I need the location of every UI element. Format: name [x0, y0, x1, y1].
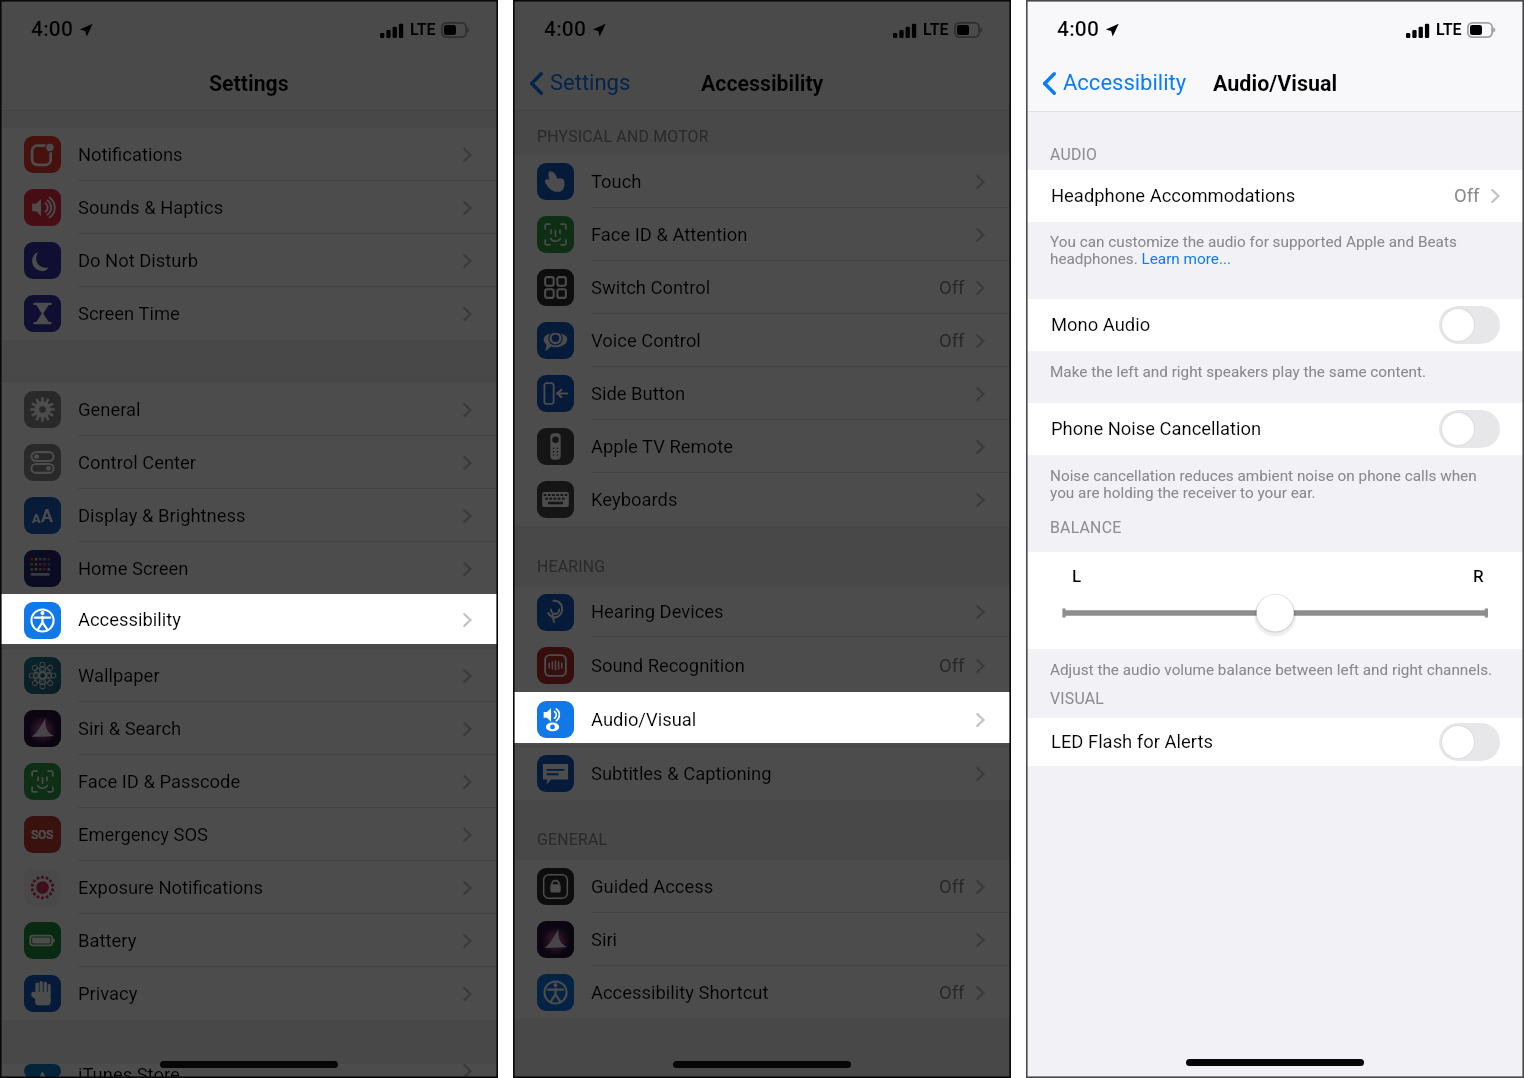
staticText: Accessibility — [701, 71, 824, 96]
staticText: 4:00 — [544, 17, 587, 42]
staticText: Screen Time — [78, 303, 180, 325]
button[interactable]: Sounds & Haptics — [0, 181, 498, 234]
staticText: Off — [939, 655, 965, 677]
button[interactable]: Keyboards — [513, 473, 1011, 526]
button[interactable]: Home Screen — [0, 542, 498, 595]
staticText: Hearing Devices — [591, 601, 724, 623]
staticText: Adjust the audio volume balance between … — [1050, 661, 1493, 679]
button[interactable]: iTunes Store — [0, 1064, 498, 1078]
button[interactable]: Apple TV Remote — [513, 420, 1011, 473]
button[interactable]: Wallpaper — [0, 649, 498, 702]
staticText: Off — [939, 330, 965, 352]
staticText: VISUAL — [1050, 689, 1105, 708]
staticText: LTE — [410, 20, 436, 39]
staticText: Siri & Search — [78, 718, 182, 740]
button[interactable]: LED Flash for Alerts — [1026, 718, 1524, 766]
staticText: Off — [939, 876, 965, 898]
staticText: Control Center — [78, 452, 197, 474]
staticText: Settings — [209, 71, 289, 96]
staticText: Off — [939, 277, 965, 299]
button[interactable]: Back — [530, 70, 631, 96]
staticText: Emergency SOS — [78, 824, 209, 846]
button[interactable]: Guided Access — [513, 860, 1011, 913]
button[interactable]: Side Button — [513, 367, 1011, 420]
button[interactable]: Headphone Accommodations — [1026, 170, 1524, 222]
button[interactable]: Face ID & Attention — [513, 208, 1011, 261]
staticText: LTE — [1436, 20, 1462, 39]
staticText: LTE — [923, 20, 949, 39]
staticText: GENERAL — [537, 830, 608, 849]
button[interactable]: Toggle — [1439, 723, 1500, 761]
button[interactable]: A — [0, 489, 498, 542]
button[interactable]: Back — [1043, 70, 1187, 96]
button[interactable]: Touch — [513, 155, 1011, 208]
button[interactable]: SOS — [0, 808, 498, 861]
staticText: Audio/Visual — [1213, 71, 1338, 96]
staticText: PHYSICAL AND MOTOR — [537, 127, 709, 146]
staticText: Notifications — [78, 144, 183, 166]
button[interactable]: Phone Noise Cancellation — [1026, 403, 1524, 455]
staticText: 4:00 — [31, 17, 74, 42]
button[interactable]: Do Not Disturb — [0, 234, 498, 287]
button[interactable]: Voice Control — [513, 314, 1011, 367]
button[interactable]: Siri & Search — [0, 702, 498, 755]
button[interactable]: You can customize the audio for supporte… — [1050, 233, 1457, 268]
other: Back — [530, 72, 543, 95]
staticText: Settings — [550, 70, 631, 96]
staticText: LED Flash for Alerts — [1051, 731, 1213, 753]
button[interactable]: Battery — [0, 914, 498, 967]
staticText: Accessibility Shortcut — [591, 982, 769, 1004]
staticText: A — [41, 505, 53, 526]
button[interactable]: Switch Control — [513, 261, 1011, 314]
staticText: Touch — [591, 171, 642, 193]
staticText: Accessibility — [1063, 70, 1187, 96]
button[interactable]: Privacy — [0, 967, 498, 1020]
staticText: Do Not Disturb — [78, 250, 199, 272]
staticText: Keyboards — [591, 489, 678, 511]
button[interactable]: Screen Time — [0, 287, 498, 340]
staticText: BALANCE — [1050, 518, 1122, 537]
staticText: Exposure Notifications — [78, 877, 263, 899]
staticText: Accessibility — [78, 609, 181, 631]
button[interactable]: Toggle — [1439, 306, 1500, 344]
staticText: Make the left and right speakers play th… — [1050, 363, 1427, 381]
staticText: iTunes Store — [78, 1064, 180, 1078]
staticText: Audio/Visual — [591, 709, 697, 731]
staticText: Sound Recognition — [591, 655, 745, 677]
button[interactable]: Audio/Visual — [513, 694, 1011, 745]
button[interactable]: Notifications — [0, 128, 498, 181]
button[interactable]: Sound Recognition — [513, 637, 1011, 694]
staticText: SOS — [31, 828, 54, 842]
other: Back — [1043, 72, 1056, 95]
button[interactable]: Siri — [513, 913, 1011, 966]
button[interactable]: Control Center — [0, 436, 498, 489]
staticText: Subtitles & Captioning — [591, 763, 772, 785]
staticText: Side Button — [591, 383, 686, 405]
staticText: Noise cancellation reduces ambient noise… — [1050, 467, 1477, 502]
staticText: Face ID & Passcode — [78, 771, 241, 793]
button[interactable]: Toggle — [1439, 410, 1500, 448]
button[interactable]: Exposure Notifications — [0, 861, 498, 914]
staticText: General — [78, 399, 141, 421]
button[interactable]: Accessibility Shortcut — [513, 966, 1011, 1019]
staticText: Battery — [78, 930, 137, 952]
staticText: Guided Access — [591, 876, 714, 898]
staticText: Home Screen — [78, 558, 189, 580]
staticText: Privacy — [78, 983, 138, 1005]
staticText: AUDIO — [1050, 145, 1098, 164]
staticText: Voice Control — [591, 330, 701, 352]
button[interactable]: General — [0, 383, 498, 436]
staticText: Face ID & Attention — [591, 224, 748, 246]
staticText: A — [32, 511, 41, 526]
button[interactable]: Face ID & Passcode — [0, 755, 498, 808]
button[interactable]: Hearing Devices — [513, 587, 1011, 637]
button[interactable]: Mono Audio — [1026, 299, 1524, 351]
button[interactable]: Accessibility — [0, 595, 498, 645]
button[interactable]: Balance slider — [1026, 586, 1524, 640]
staticText: Off — [1454, 185, 1480, 207]
staticText: Headphone Accommodations — [1051, 185, 1296, 207]
staticText: Apple TV Remote — [591, 436, 733, 458]
button[interactable]: Subtitles & Captioning — [513, 747, 1011, 800]
staticText: R — [1473, 566, 1484, 586]
staticText: Wallpaper — [78, 665, 160, 687]
